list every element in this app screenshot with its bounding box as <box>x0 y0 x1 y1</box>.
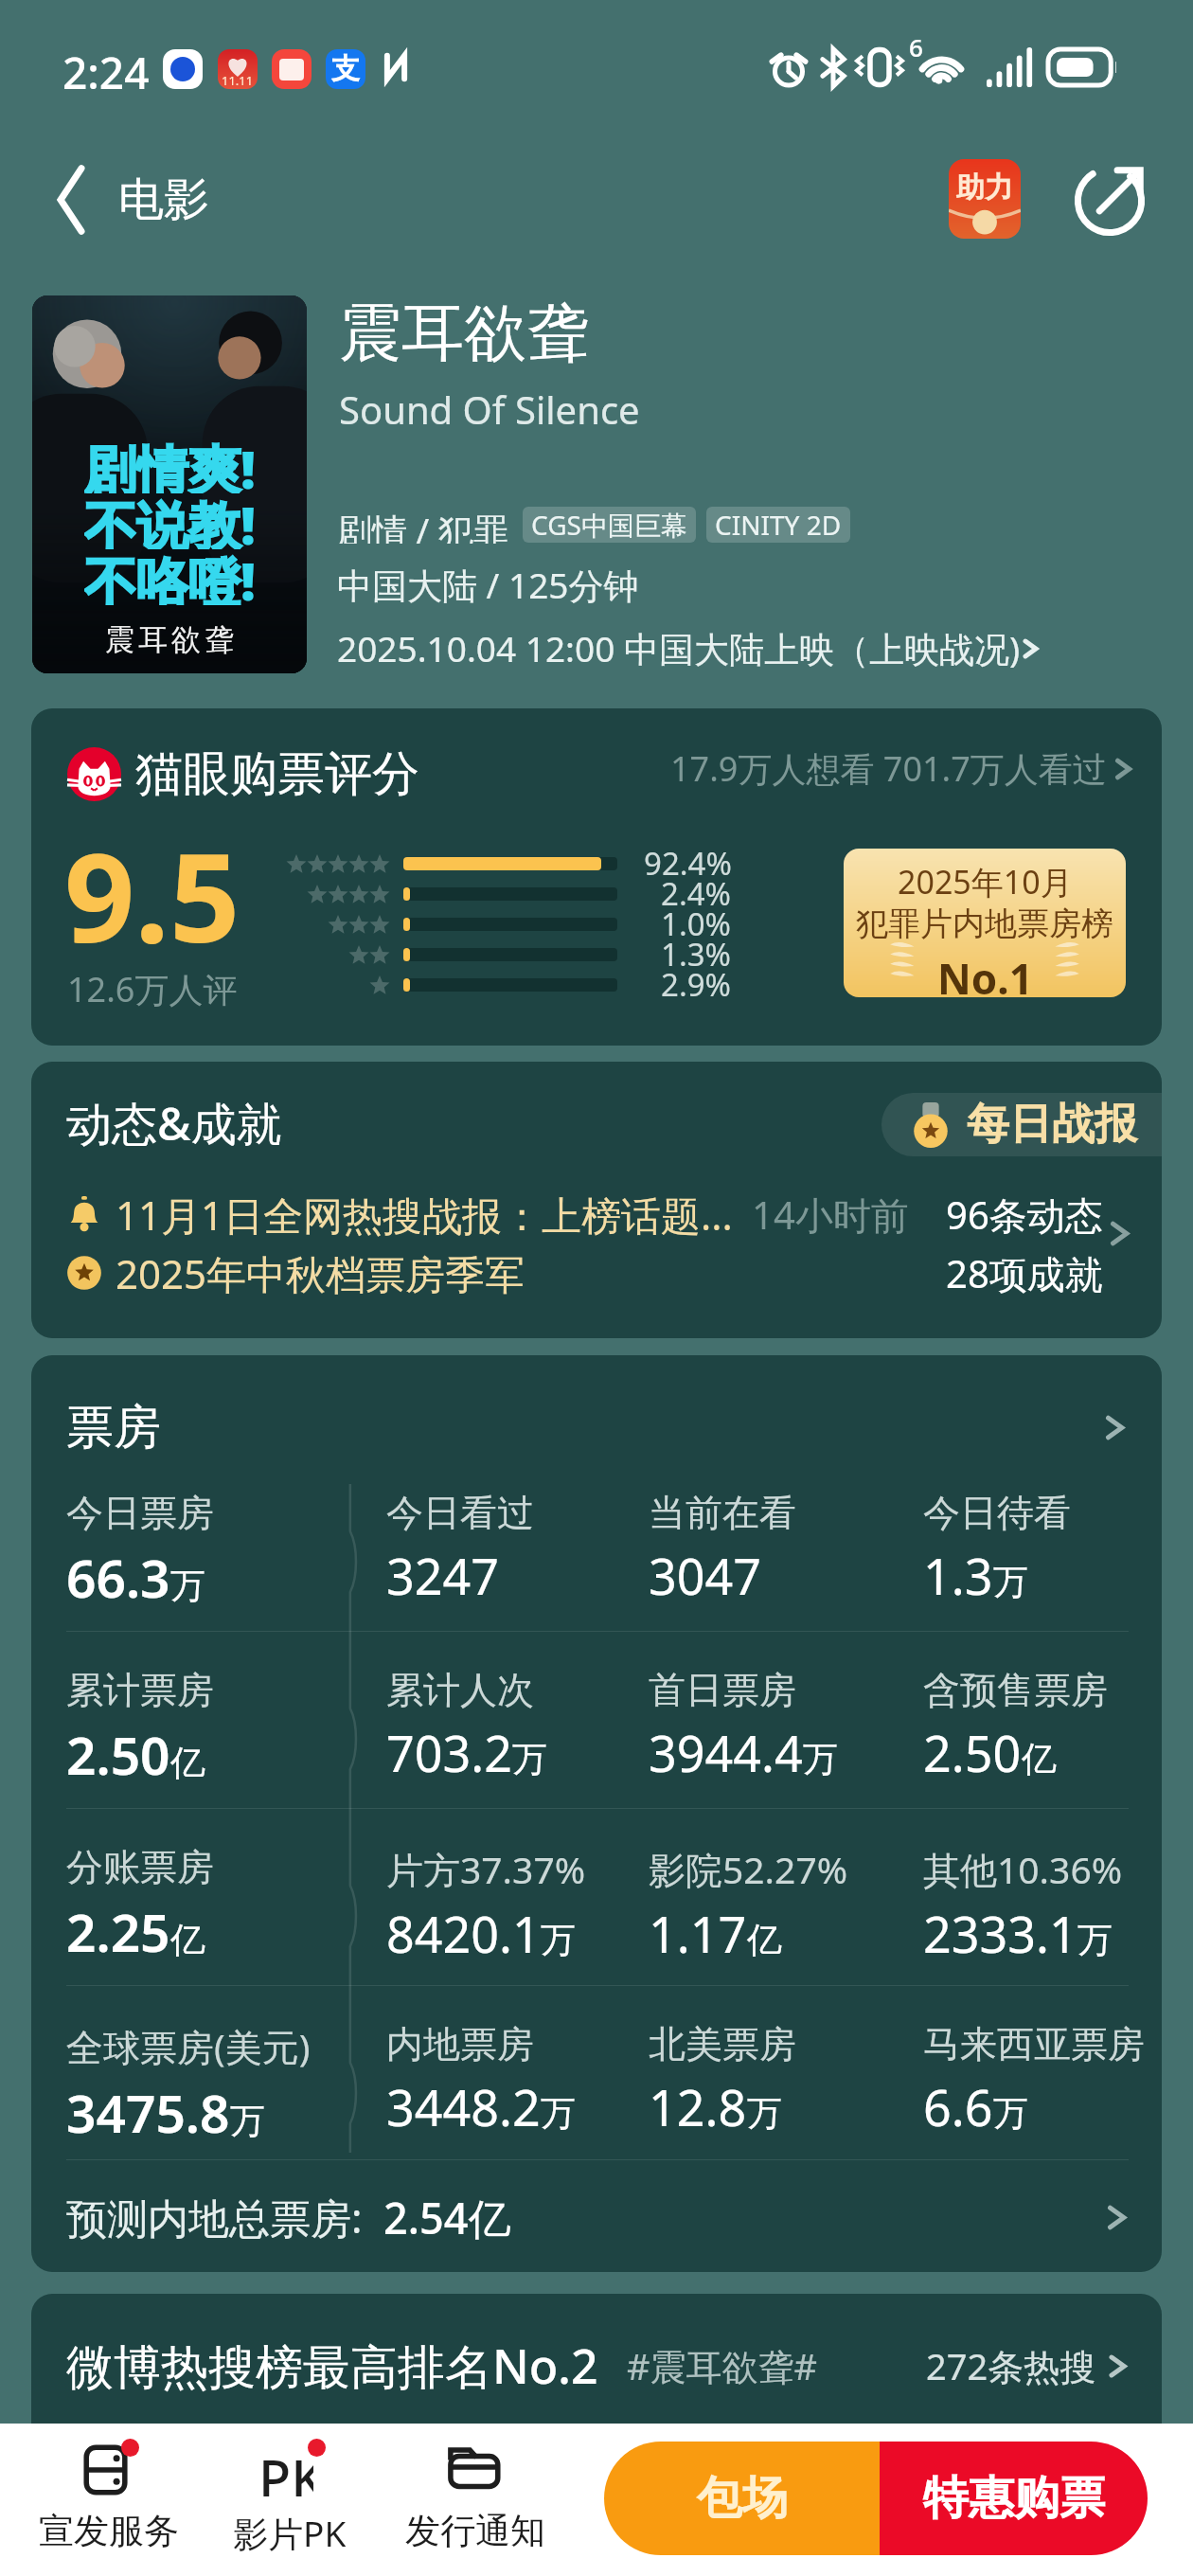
button[interactable]: Share <box>1070 161 1149 241</box>
button[interactable]: PK <box>205 2442 375 2570</box>
staticText: 当前在看 <box>649 1490 796 1536</box>
staticText: #震耳欲聋# <box>627 2341 818 2390</box>
button[interactable]: 2025年10月 <box>844 849 1126 997</box>
staticText: 万 <box>747 2091 782 2136</box>
staticText: 272条热搜 <box>926 2341 1096 2390</box>
staticText: 发行通知 <box>405 2509 545 2553</box>
staticText: 28项成就 <box>946 1247 1103 1299</box>
staticText: 片方37.37% <box>386 1844 586 1894</box>
staticText: 3475.8 <box>66 2077 230 2148</box>
staticText: 9.5 <box>64 811 240 978</box>
staticText: 3247 <box>386 1542 499 1609</box>
staticText: 累计票房 <box>66 1667 214 1713</box>
staticText: 剧情爽! <box>84 433 256 493</box>
button[interactable]: 发行通知 <box>390 2442 561 2570</box>
staticText: 2.25 <box>66 1896 170 1967</box>
staticText: 亿 <box>1022 1737 1057 1781</box>
staticText: 每日战报 <box>967 1098 1137 1152</box>
staticText: 票房 <box>66 1398 161 1458</box>
staticText: 万 <box>512 1737 547 1781</box>
staticText: 亿 <box>170 1918 205 1962</box>
staticText: 96条动态 <box>946 1189 1103 1241</box>
staticText: 亿 <box>747 1918 782 1962</box>
staticText: 其他10.36% <box>923 1844 1123 1894</box>
staticText: 1.0% <box>661 903 732 945</box>
button[interactable]: 票房 <box>66 1398 1127 1458</box>
staticText: 2.50 <box>923 1719 1022 1786</box>
staticText: 今日待看 <box>923 1490 1071 1536</box>
staticText: 1.17 <box>649 1900 747 1967</box>
staticText: 全球票房(美元) <box>66 2021 311 2071</box>
staticText: 微博热搜榜最高排名No.2 <box>66 2334 598 2398</box>
staticText: 2:24 <box>62 43 150 102</box>
staticText: 犯罪片内地票房榜 <box>856 903 1113 944</box>
staticText: 11.11 <box>222 72 254 89</box>
staticText: No.1 <box>937 950 1033 997</box>
button[interactable]: 预测内地总票房: <box>66 2189 1129 2246</box>
staticText: 北美票房 <box>649 2021 796 2067</box>
staticText: 中国大陆 / 125分钟 <box>337 561 639 609</box>
staticText: 动态&成就 <box>66 1092 282 1154</box>
other: Back <box>47 157 95 242</box>
staticText: 不咯噔! <box>84 545 256 605</box>
staticText: 万 <box>993 1560 1028 1604</box>
staticText: 含预售票房 <box>923 1667 1108 1713</box>
staticText: 1.3% <box>661 933 732 975</box>
staticText: 震耳欲聋 <box>339 294 589 372</box>
staticText: 11月1日全网热搜战报：上榜话题... <box>116 1188 733 1242</box>
staticText: 支 <box>331 51 360 87</box>
staticText: 1.3 <box>923 1542 993 1609</box>
staticText: 包场 <box>697 2470 788 2527</box>
staticText: 3944.4 <box>649 1719 803 1786</box>
staticText: 不说教! <box>84 489 256 549</box>
staticText: 内地票房 <box>386 2021 534 2067</box>
staticText: 万 <box>541 2091 576 2136</box>
staticText: 12.6万人评 <box>67 966 238 1012</box>
button[interactable]: 宣发服务 <box>24 2442 194 2570</box>
staticText: 14小时前 <box>752 1189 909 1241</box>
button[interactable]: 每日战报 <box>881 1093 1162 1156</box>
button[interactable]: 微博热搜榜最高排名No.2 <box>66 2318 1129 2413</box>
staticText: 宣发服务 <box>39 2509 179 2553</box>
staticText: 3047 <box>649 1542 761 1609</box>
button[interactable]: 2025年中秋档票房季军 <box>66 1243 1127 1302</box>
staticText: CINITY 2D <box>715 507 842 543</box>
staticText: 2.50 <box>66 1719 170 1790</box>
staticText: PK <box>258 2442 313 2496</box>
staticText: 今日看过 <box>386 1490 534 1536</box>
staticText: 预测内地总票房: <box>66 2190 383 2245</box>
staticText: 影院52.27% <box>649 1844 848 1894</box>
staticText: 2.4% <box>661 872 732 915</box>
staticText: 万 <box>803 1737 838 1781</box>
staticText: 首日票房 <box>649 1667 796 1713</box>
button[interactable]: 助力 <box>949 159 1021 239</box>
staticText: 2.54亿 <box>383 2189 511 2246</box>
staticText: 17.9万人想看 701.7万人看过 <box>670 745 1107 792</box>
button[interactable]: 2025.10.04 12:00 中国大陆上映（上映战况) <box>337 624 1040 672</box>
staticText: 66.3 <box>66 1542 170 1613</box>
staticText: 6.6 <box>923 2073 993 2140</box>
button[interactable]: 包场 <box>604 2442 880 2555</box>
staticText: 2025年中秋档票房季军 <box>116 1246 525 1300</box>
staticText: 特惠购票 <box>923 2470 1105 2527</box>
staticText: 影片PK <box>233 2509 347 2557</box>
staticText: 今日票房 <box>66 1490 214 1536</box>
staticText: 2333.1 <box>923 1900 1077 1967</box>
staticText: 猫眼购票评分 <box>135 744 419 804</box>
staticText: 电影 <box>118 171 209 228</box>
staticText: 亿 <box>170 1741 205 1785</box>
button[interactable]: 11月1日全网热搜战报：上榜话题... <box>66 1185 1127 1243</box>
button[interactable]: 17.9万人想看 701.7万人看过 <box>670 745 1133 792</box>
staticText: 助力 <box>956 170 1013 206</box>
button[interactable]: Back <box>47 157 232 242</box>
staticText: 8420.1 <box>386 1900 541 1967</box>
staticText: 马来西亚票房 <box>923 2021 1145 2067</box>
staticText: 万 <box>541 1918 576 1962</box>
button[interactable]: 特惠购票 <box>880 2442 1148 2555</box>
staticText: 万 <box>1077 1918 1113 1962</box>
button[interactable]: Movie poster <box>32 295 307 673</box>
staticText: 2025.10.04 12:00 中国大陆上映（上映战况) <box>337 624 1021 672</box>
staticText: 703.2 <box>386 1719 512 1786</box>
staticText: 12.8 <box>649 2073 747 2140</box>
staticText: 剧情 / 犯罪 <box>337 506 509 544</box>
